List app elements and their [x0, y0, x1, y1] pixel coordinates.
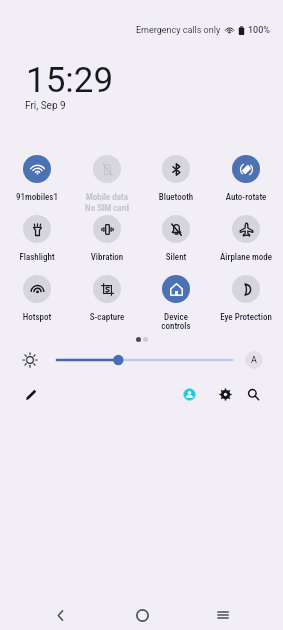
staticText: 91mobiles1: [10, 192, 64, 203]
button[interactable]: Bluetooth: [144, 155, 208, 203]
staticText: 100%: [248, 25, 270, 36]
staticText: 15:29: [26, 60, 114, 101]
button[interactable]: Search: [243, 384, 263, 404]
button[interactable]: Auto brightness: [245, 351, 263, 369]
staticText: Hotspot: [10, 312, 64, 323]
staticText: Flashlight: [10, 252, 64, 263]
staticText: Emergency calls only: [136, 25, 221, 36]
staticText: Vibration: [80, 252, 134, 263]
staticText: Mobile data: [80, 192, 134, 203]
button[interactable]: Edit: [21, 384, 41, 404]
button[interactable]: Account: [179, 384, 199, 404]
button[interactable]: Recents: [209, 601, 237, 629]
staticText: Silent: [149, 252, 203, 263]
button[interactable]: 91mobiles1: [5, 155, 69, 203]
staticText: Device controls: [149, 312, 203, 331]
button[interactable]: Settings: [215, 384, 235, 404]
button[interactable]: Eye Protection: [214, 275, 278, 323]
button[interactable]: Hotspot: [5, 275, 69, 323]
button[interactable]: Flashlight: [5, 215, 69, 263]
button[interactable]: Home: [128, 601, 156, 629]
staticText: No SIM card: [78, 203, 136, 214]
staticText: A: [251, 355, 257, 366]
staticText: Auto-rotate: [219, 192, 273, 203]
button[interactable]: Back: [46, 601, 74, 629]
button[interactable]: Silent: [144, 215, 208, 263]
button[interactable]: Airplane mode: [214, 215, 278, 263]
staticText: Bluetooth: [149, 192, 203, 203]
button[interactable]: Auto-rotate: [214, 155, 278, 203]
button[interactable]: S-capture: [75, 275, 139, 323]
button[interactable]: Device controls: [144, 275, 208, 331]
staticText: Airplane mode: [219, 252, 273, 263]
staticText: S-capture: [80, 312, 134, 323]
staticText: Eye Protection: [219, 312, 273, 323]
button[interactable]: Vibration: [75, 215, 139, 263]
button[interactable]: Mobile data: [75, 155, 139, 214]
staticText: Fri, Sep 9: [25, 100, 66, 112]
